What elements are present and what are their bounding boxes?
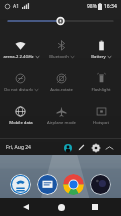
button[interactable]: Collapse xyxy=(104,142,115,153)
button[interactable]: Photos xyxy=(90,174,111,195)
button[interactable]: arena-2 2.4GHz xyxy=(0,33,41,66)
button[interactable]: Auto-rotate xyxy=(41,66,81,99)
button[interactable]: Recents xyxy=(86,198,104,216)
button[interactable]: Home xyxy=(52,198,70,216)
staticText: Bluetooth xyxy=(49,54,69,60)
staticText: Battery xyxy=(91,54,106,60)
button[interactable]: Phone xyxy=(10,174,31,195)
button[interactable]: Brightness xyxy=(8,12,113,30)
button[interactable]: Settings xyxy=(90,142,101,153)
staticText: Do not disturb xyxy=(4,87,33,93)
button[interactable]: Hotspot xyxy=(81,99,121,132)
button[interactable]: Battery xyxy=(81,33,121,66)
button[interactable]: Messages xyxy=(37,174,58,195)
staticText: 16:34 xyxy=(104,3,117,10)
staticText: 98% xyxy=(87,3,97,10)
button[interactable]: Chrome xyxy=(63,174,84,195)
button[interactable]: User xyxy=(62,142,73,153)
button[interactable]: Do not disturb xyxy=(0,66,41,99)
button[interactable]: Flashlight xyxy=(81,66,121,99)
staticText: Airplane mode xyxy=(47,120,76,126)
button[interactable]: Back xyxy=(17,198,35,216)
button[interactable]: Edit xyxy=(76,142,87,153)
staticText: A1 xyxy=(13,3,20,10)
button[interactable]: Bluetooth xyxy=(41,33,81,66)
staticText: Auto-rotate xyxy=(50,87,73,93)
button[interactable]: Airplane mode xyxy=(41,99,81,132)
staticText: Fri, Aug 24 xyxy=(6,144,31,151)
staticText: Hotspot xyxy=(93,120,109,126)
button[interactable]: Mobile data xyxy=(0,99,41,132)
staticText: Flashlight xyxy=(91,87,111,93)
staticText: arena-2 2.4GHz xyxy=(3,54,34,60)
staticText: Mobile data xyxy=(9,120,33,126)
